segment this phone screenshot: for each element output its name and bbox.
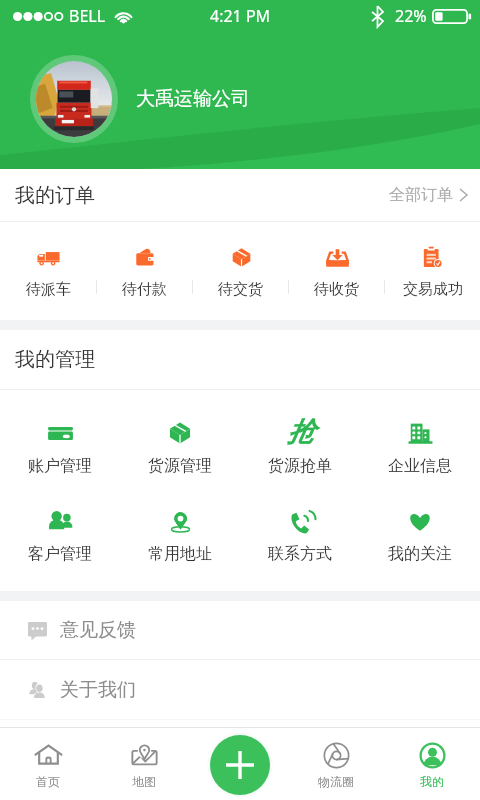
button[interactable]: 关于我们 xyxy=(0,660,480,719)
staticText: 我的 xyxy=(420,774,444,789)
staticText: 大禹运输公司 xyxy=(136,87,250,111)
button[interactable]: 联系方式 xyxy=(240,490,360,564)
staticText: 账户管理 xyxy=(28,456,92,476)
button[interactable]: 我的订单 xyxy=(0,169,480,221)
button[interactable]: Add xyxy=(210,735,270,795)
button[interactable]: 待派车 xyxy=(0,222,96,299)
staticText: 客户管理 xyxy=(28,544,92,564)
staticText: 交易成功 xyxy=(403,280,463,299)
staticText: 我的关注 xyxy=(388,544,452,564)
staticText: 抢 xyxy=(287,415,314,449)
button[interactable]: 常用地址 xyxy=(120,490,240,564)
staticText: 待付款 xyxy=(122,280,167,299)
staticText: 待派车 xyxy=(26,280,71,299)
staticText: 联系方式 xyxy=(268,544,332,564)
button[interactable]: 账户管理 xyxy=(0,390,120,476)
staticText: 待收货 xyxy=(314,280,359,299)
staticText: 关于我们 xyxy=(60,678,136,702)
button[interactable]: 抢 xyxy=(240,390,360,476)
button[interactable]: 客户管理 xyxy=(0,490,120,564)
staticText: 地图 xyxy=(132,774,156,789)
staticText: 我的订单 xyxy=(15,183,95,208)
button[interactable]: 我的关注 xyxy=(360,490,480,564)
button[interactable]: 地图 xyxy=(96,727,192,800)
staticText: 首页 xyxy=(36,774,60,789)
staticText: 4:21 PM xyxy=(210,5,271,27)
button[interactable]: 我的 xyxy=(384,727,480,800)
staticText: 物流圈 xyxy=(318,774,354,789)
staticText: 常用地址 xyxy=(148,544,212,564)
staticText: 意见反馈 xyxy=(60,618,136,642)
button[interactable]: 意见反馈 xyxy=(0,601,480,659)
button[interactable]: 货源管理 xyxy=(120,390,240,476)
staticText: 待交货 xyxy=(218,280,263,299)
button[interactable]: 待付款 xyxy=(97,222,192,299)
button[interactable]: 企业信息 xyxy=(360,390,480,476)
staticText: 我的管理 xyxy=(15,347,95,372)
button[interactable]: 交易成功 xyxy=(385,222,480,299)
staticText: 货源管理 xyxy=(148,456,212,476)
staticText: 货源抢单 xyxy=(268,456,332,476)
staticText: 全部订单 xyxy=(389,185,453,205)
button[interactable]: 待收货 xyxy=(289,222,384,299)
staticText: 企业信息 xyxy=(388,456,452,476)
staticText: BELL xyxy=(69,5,106,27)
button[interactable]: 物流圈 xyxy=(288,727,384,800)
button[interactable] xyxy=(36,61,112,137)
staticText: 22% xyxy=(395,5,427,27)
button[interactable]: 待交货 xyxy=(193,222,288,299)
button[interactable]: 首页 xyxy=(0,727,96,800)
